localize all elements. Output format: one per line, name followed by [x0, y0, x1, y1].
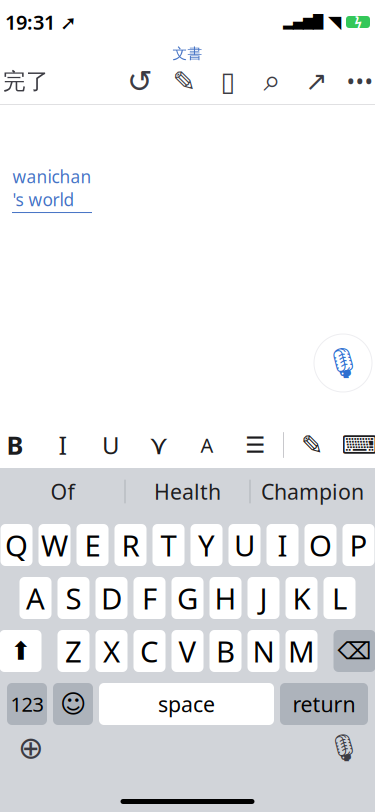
button[interactable]: ⌫ [333, 630, 375, 672]
button[interactable]: 完了 [0, 61, 61, 101]
button[interactable]: 123 [7, 683, 47, 725]
button[interactable]: U [228, 524, 260, 566]
staticText: I [277, 525, 287, 564]
button[interactable]: K [285, 577, 317, 619]
staticText: O [309, 525, 332, 564]
button[interactable]: Highlight [139, 423, 179, 467]
staticText: 123 [10, 691, 43, 717]
button[interactable]: Health [125, 469, 249, 513]
staticText: ✎ [301, 430, 323, 460]
button[interactable]: P [342, 524, 374, 566]
button[interactable]: Hide keyboard [340, 423, 375, 467]
staticText: L [332, 578, 347, 617]
button[interactable]: Underline [91, 423, 131, 467]
staticText: K [292, 578, 310, 617]
button[interactable]: Draw [292, 423, 332, 467]
button[interactable]: W [38, 524, 70, 566]
button[interactable]: Search [250, 61, 294, 101]
button[interactable]: L [323, 577, 355, 619]
button[interactable]: Undo [118, 61, 162, 101]
staticText: C [140, 631, 159, 670]
button[interactable]: J [247, 577, 279, 619]
button[interactable]: G [171, 577, 203, 619]
button[interactable]: return [280, 683, 368, 725]
staticText: ϟ [354, 13, 361, 31]
button[interactable]: Of [0, 469, 124, 513]
button[interactable]: I [266, 524, 298, 566]
staticText: F [142, 578, 157, 617]
button[interactable]: C [133, 630, 165, 672]
button[interactable]: Text color [187, 423, 227, 467]
button[interactable]: O [304, 524, 336, 566]
staticText: 🎙 [324, 346, 361, 380]
button[interactable]: X [95, 630, 127, 672]
button[interactable]: Z [57, 630, 89, 672]
staticText: 19:31 ➚ [5, 9, 77, 35]
staticText: ⋎ [149, 430, 169, 460]
staticText: ▯ [220, 66, 235, 97]
staticText: D [101, 578, 122, 617]
button[interactable]: More [338, 61, 375, 101]
staticText: A [200, 432, 213, 458]
staticText: ▂▄▆█ [283, 14, 323, 29]
staticText: ••• [346, 66, 373, 96]
button[interactable]: E [76, 524, 108, 566]
button[interactable]: N [247, 630, 279, 672]
staticText: U [102, 429, 120, 461]
staticText: ◥ [328, 12, 341, 32]
button[interactable]: Champion [250, 469, 374, 513]
button[interactable]: space [99, 683, 274, 725]
staticText: 🎙 [327, 733, 361, 763]
staticText: Y [198, 525, 215, 564]
button[interactable]: F [133, 577, 165, 619]
button[interactable]: D [95, 577, 127, 619]
staticText: ⌕ [263, 66, 280, 96]
staticText: R [121, 525, 139, 564]
staticText: ↗ [305, 66, 327, 97]
button[interactable]: Q [0, 524, 32, 566]
button[interactable]: Italic [43, 423, 83, 467]
button[interactable]: S [57, 577, 89, 619]
staticText: X [103, 631, 120, 670]
staticText: return [292, 690, 355, 718]
button[interactable]: ⬆ [0, 630, 41, 672]
staticText: Health [154, 477, 221, 506]
button[interactable]: V [171, 630, 203, 672]
staticText: E [84, 525, 100, 564]
staticText: I [58, 428, 67, 462]
button[interactable]: M [285, 630, 317, 672]
button[interactable]: B [209, 630, 241, 672]
staticText: Champion [261, 477, 364, 506]
button[interactable]: H [209, 577, 241, 619]
staticText: S [65, 578, 81, 617]
button[interactable]: Lists [235, 423, 275, 467]
staticText: U [234, 525, 255, 564]
staticText: T [160, 525, 176, 564]
button[interactable]: Page layout [206, 61, 250, 101]
staticText: ⬆ [10, 637, 31, 665]
staticText: ⊕ [18, 731, 44, 765]
staticText: P [349, 525, 367, 564]
button[interactable]: Y [190, 524, 222, 566]
button[interactable]: ☺ [53, 683, 93, 725]
staticText: A [26, 578, 45, 617]
staticText: B [216, 631, 235, 670]
button[interactable]: T [152, 524, 184, 566]
staticText: ⌨ [341, 431, 375, 459]
button[interactable]: R [114, 524, 146, 566]
staticText: wanichan's world [12, 165, 91, 211]
staticText: N [252, 631, 274, 670]
staticText: B [6, 428, 23, 462]
button[interactable]: Markup [162, 61, 206, 101]
button[interactable]: wanichan's world [12, 165, 92, 213]
button[interactable]: Next keyboard [9, 728, 53, 768]
staticText: H [214, 578, 236, 617]
button[interactable]: Dictation [312, 332, 374, 394]
staticText: ☺ [60, 690, 86, 718]
staticText: ↺ [127, 64, 153, 99]
button[interactable]: Dictate [322, 728, 366, 768]
staticText: ⌫ [337, 637, 371, 665]
button[interactable]: Bold [0, 423, 35, 467]
button[interactable]: A [19, 577, 51, 619]
button[interactable]: Share [294, 61, 338, 101]
